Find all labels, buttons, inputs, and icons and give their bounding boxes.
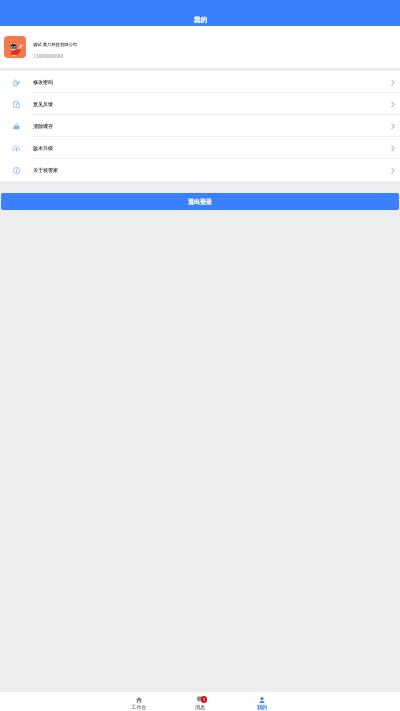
staticText: 消息 xyxy=(195,704,205,710)
button[interactable]: 意见反馈 xyxy=(0,93,400,115)
button[interactable]: 测试 奥力科技有限公司 xyxy=(0,26,400,68)
button[interactable]: 工作台 xyxy=(123,692,153,711)
staticText: 测试 奥力科技有限公司 xyxy=(33,41,78,47)
staticText: 13888888888 xyxy=(33,53,64,60)
staticText: 修改密码 xyxy=(33,79,53,85)
button[interactable]: 我的 xyxy=(247,692,277,711)
staticText: 清除缓存 xyxy=(33,123,53,129)
staticText: 版本升级 xyxy=(33,145,53,151)
staticText: 我的 xyxy=(257,704,267,710)
button[interactable]: 退出登录 xyxy=(1,193,399,210)
staticText: 我的 xyxy=(194,16,207,24)
button[interactable]: 关于校管家 xyxy=(0,159,400,181)
button[interactable]: 清除缓存 xyxy=(0,115,400,137)
staticText: 工作台 xyxy=(131,704,146,710)
staticText: 退出登录 xyxy=(188,198,212,206)
staticText: 关于校管家 xyxy=(33,167,58,173)
staticText: 意见反馈 xyxy=(33,101,53,107)
button[interactable]: 1 xyxy=(185,692,215,711)
staticText: 1 xyxy=(203,697,206,702)
button[interactable]: 版本升级 xyxy=(0,137,400,159)
button[interactable]: 修改密码 xyxy=(0,71,400,93)
